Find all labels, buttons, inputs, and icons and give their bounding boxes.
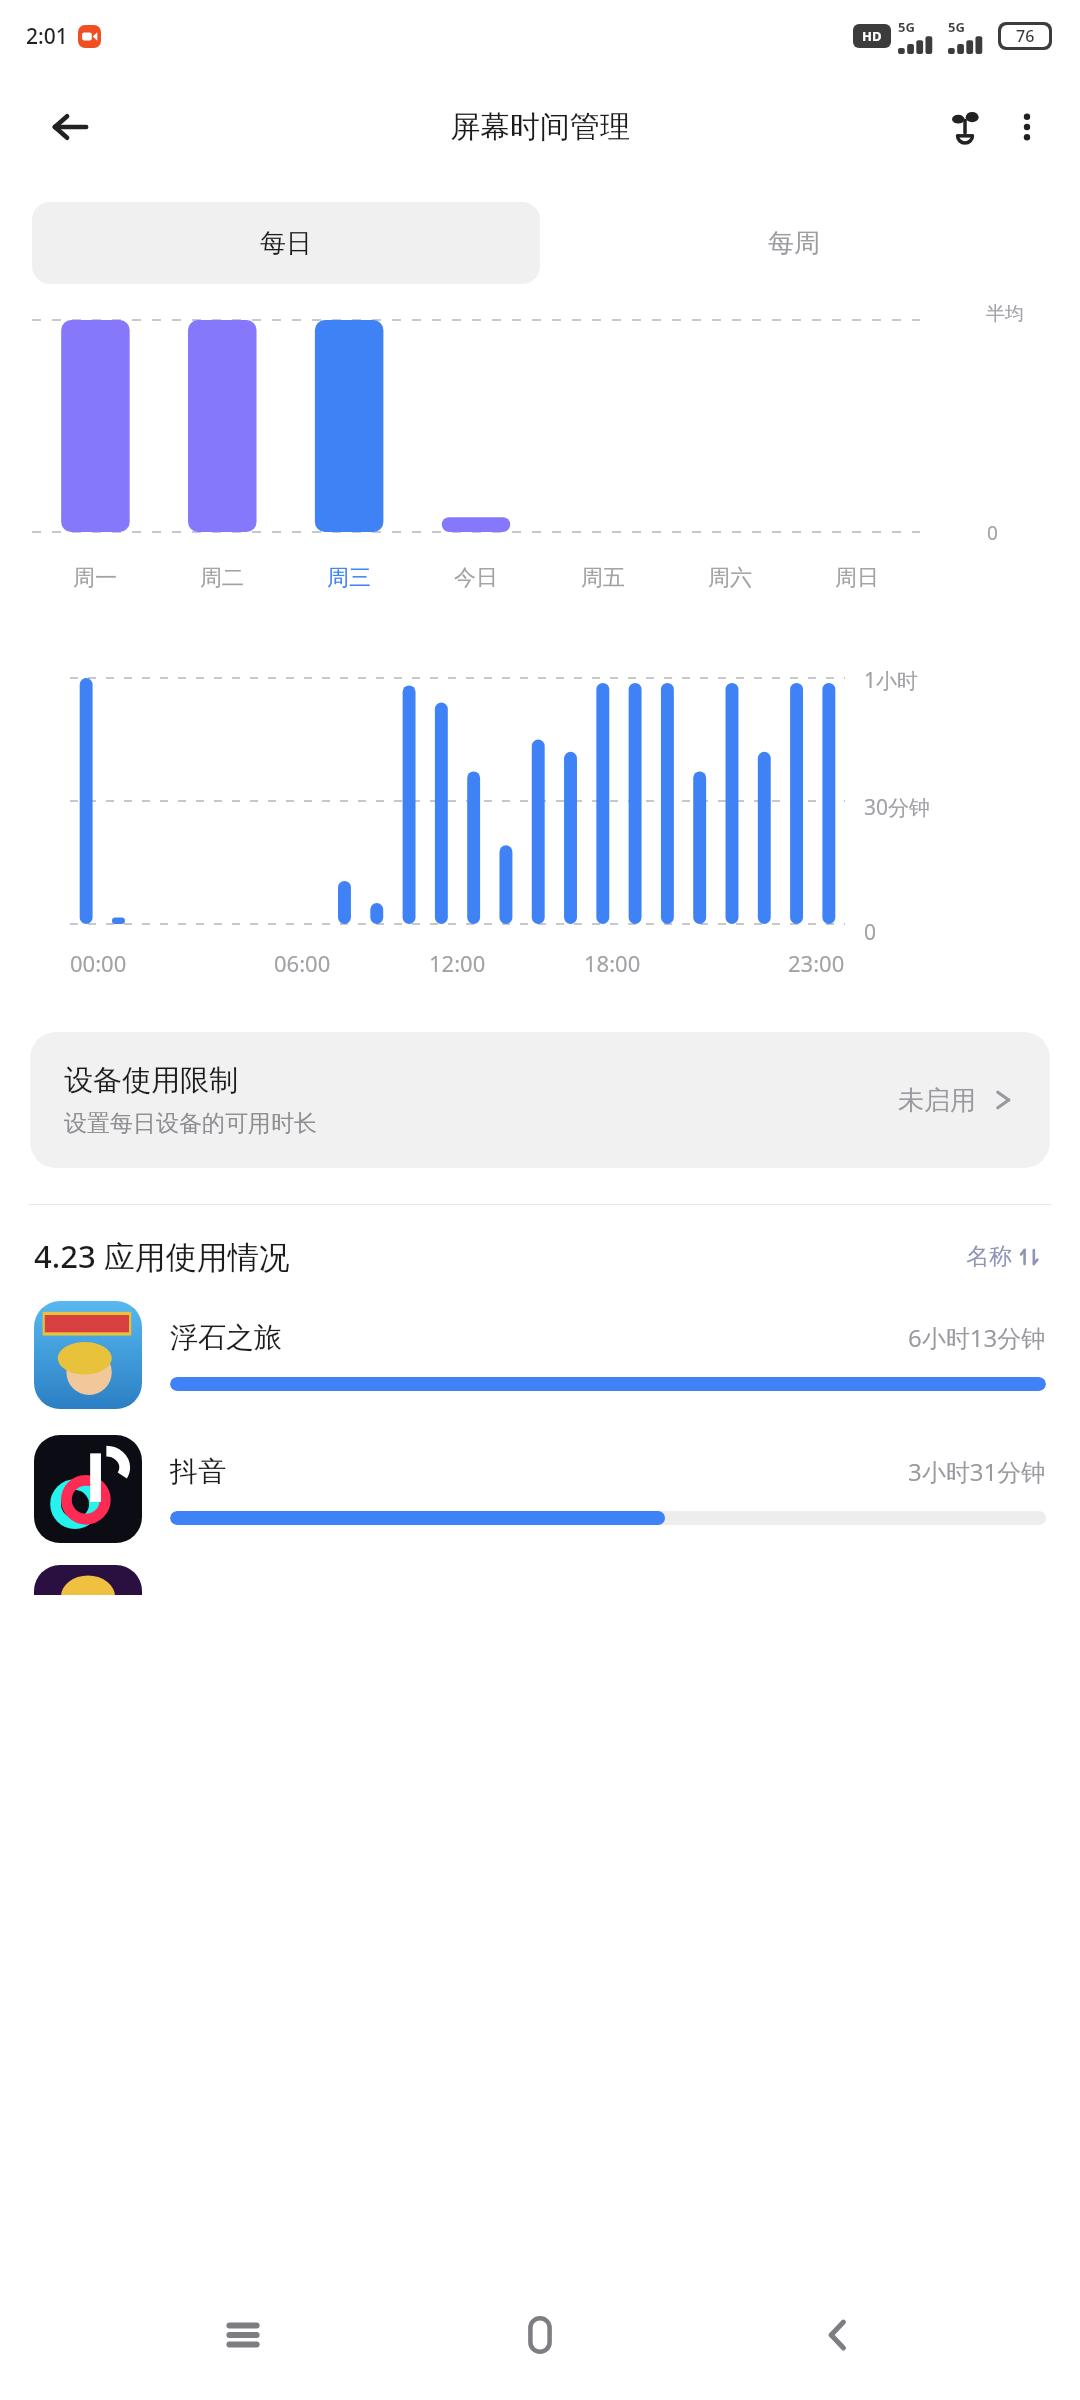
button[interactable]: 周六 [666,564,793,592]
staticText: 周一 [73,564,117,592]
staticText: 设置每日设备的可用时长 [64,1109,317,1138]
staticText: 6小时13分钟 [908,1321,1046,1354]
staticText: 06:00 [274,948,331,978]
button[interactable]: 周五 [539,564,666,592]
staticText: 4.23 应用使用情况 [34,1235,960,1277]
staticText: 半均 [986,302,1024,326]
staticText: 未启用 [898,1084,976,1117]
staticText: 每周 [768,227,820,260]
staticText: 23:00 [788,948,845,978]
button[interactable]: 设备使用限制 [30,1032,1050,1168]
staticText: 0 [987,520,998,546]
staticText: 76 [1016,25,1035,47]
button[interactable]: Back [42,99,98,155]
staticText: 30分钟 [864,793,931,822]
button[interactable]: Recents [188,2280,298,2390]
staticText: 00:00 [70,948,127,978]
staticText: 12:00 [429,948,486,978]
button[interactable] [0,1565,1080,1595]
button[interactable]: 周日 [793,564,920,592]
staticText: 抖音 [170,1454,908,1489]
staticText: 2:01 [26,22,68,51]
staticText: 每日 [260,227,312,260]
button[interactable]: 名称 [960,1236,1046,1277]
button[interactable]: Focus mode [934,96,996,158]
staticText: 今日 [454,564,498,592]
staticText: 设备使用限制 [64,1062,238,1099]
staticText: 5G [898,18,915,36]
staticText: 周三 [327,564,371,592]
staticText: 1小时 [864,666,919,695]
button[interactable]: 每周 [540,202,1048,284]
staticText: 周六 [708,564,752,592]
button[interactable]: Home [485,2280,595,2390]
staticText: 屏幕时间管理 [450,108,630,146]
staticText: 名称 [966,1242,1012,1271]
staticText: 周日 [835,564,879,592]
button[interactable]: 浮石之旅 [0,1297,1080,1413]
staticText: 0 [864,918,877,944]
staticText: 5G [948,18,965,36]
button[interactable]: 抖音 [0,1431,1080,1547]
button[interactable]: 每日 [32,202,540,284]
staticText: 周二 [200,564,244,592]
button[interactable]: 周一 [32,564,158,592]
staticText: 浮石之旅 [170,1320,908,1355]
button[interactable]: Back [783,2280,893,2390]
button[interactable]: 今日 [412,564,539,592]
button[interactable]: 周三 [285,564,412,592]
staticText: 18:00 [584,948,641,978]
staticText: 3小时31分钟 [908,1455,1046,1488]
button[interactable]: 周二 [158,564,285,592]
staticText: 周五 [581,564,625,592]
staticText: HD [862,27,882,45]
button[interactable]: More options [996,96,1058,158]
